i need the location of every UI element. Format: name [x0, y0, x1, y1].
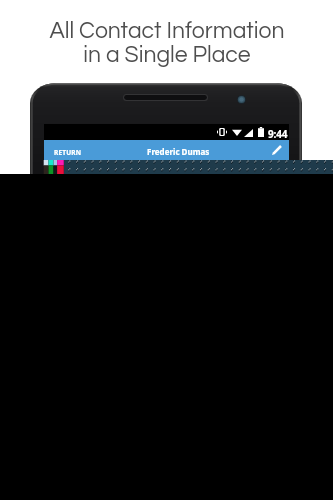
staticText: All Contact Information [49, 19, 285, 43]
staticText: 9:44 [268, 127, 288, 141]
staticText: RETURN [54, 148, 82, 157]
staticText: Frederic Dumas [147, 146, 210, 157]
staticText: in a Single Place [83, 43, 251, 67]
other: Loading image [0, 160, 333, 174]
button[interactable]: Edit [270, 143, 284, 157]
button[interactable]: RETURN [50, 142, 86, 158]
